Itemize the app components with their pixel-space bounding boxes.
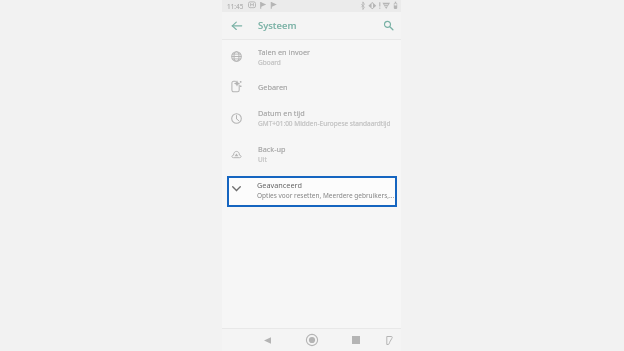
staticText: Datum en tijd [258,108,305,118]
button[interactable]: Datum en tijd [222,100,401,136]
staticText: Back-up [258,144,286,154]
staticText: Geavanceerd [257,180,302,190]
staticText: Systeem [258,19,297,32]
button[interactable]: Back-up [222,136,401,172]
button[interactable]: Gebaren [222,73,401,100]
staticText: Gebaren [258,82,288,92]
button[interactable]: Search [378,15,399,36]
button[interactable]: Home [303,331,321,349]
button[interactable]: Geavanceerd [227,176,397,207]
button[interactable]: Back [258,331,276,349]
staticText: Talen en invoer [258,47,311,57]
button[interactable]: Back [226,15,247,36]
button[interactable]: One handed mode [380,331,398,349]
button[interactable]: Recent apps [347,331,365,349]
staticText: Opties voor resetten, Meerdere gebruiker… [257,191,395,200]
staticText: 11:45 [227,2,244,11]
staticText: Uit [258,155,267,164]
staticText: GMT+01:00 Midden-Europese standaardtijd [258,119,391,128]
button[interactable]: Talen en invoer [222,40,401,73]
staticText: Gboard [258,58,281,67]
